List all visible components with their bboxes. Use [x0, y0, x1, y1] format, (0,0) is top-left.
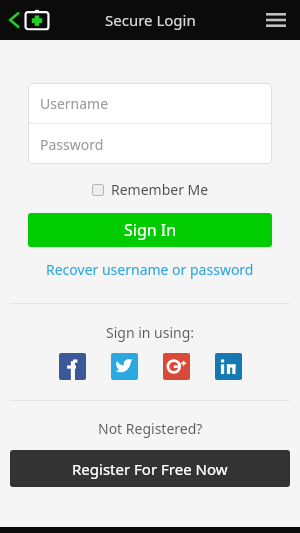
button[interactable]: Username [28, 83, 272, 123]
button[interactable]: Register For Free Now [10, 450, 290, 487]
staticText: Secure Login [105, 10, 196, 30]
button[interactable]: LinkedIn [215, 353, 242, 380]
button[interactable]: Back [5, 5, 53, 35]
button[interactable]: Twitter [111, 353, 138, 380]
button[interactable]: Password [28, 124, 272, 164]
button[interactable]: Recover username or password [40, 258, 260, 281]
button[interactable]: Facebook [59, 353, 86, 380]
staticText: Username [40, 94, 109, 113]
staticText: Sign In [124, 219, 177, 241]
staticText: Password [40, 135, 104, 154]
staticText: Not Registered? [98, 419, 203, 438]
staticText: Register For Free Now [72, 459, 228, 479]
button[interactable]: Sign In [28, 213, 272, 247]
staticText: Sign in using: [106, 323, 195, 342]
button[interactable]: Remember Me [88, 178, 213, 201]
button[interactable]: Google Plus [163, 353, 190, 380]
button[interactable]: Menu [260, 7, 292, 33]
staticText: Recover username or password [46, 260, 254, 279]
staticText: Remember Me [111, 180, 209, 199]
